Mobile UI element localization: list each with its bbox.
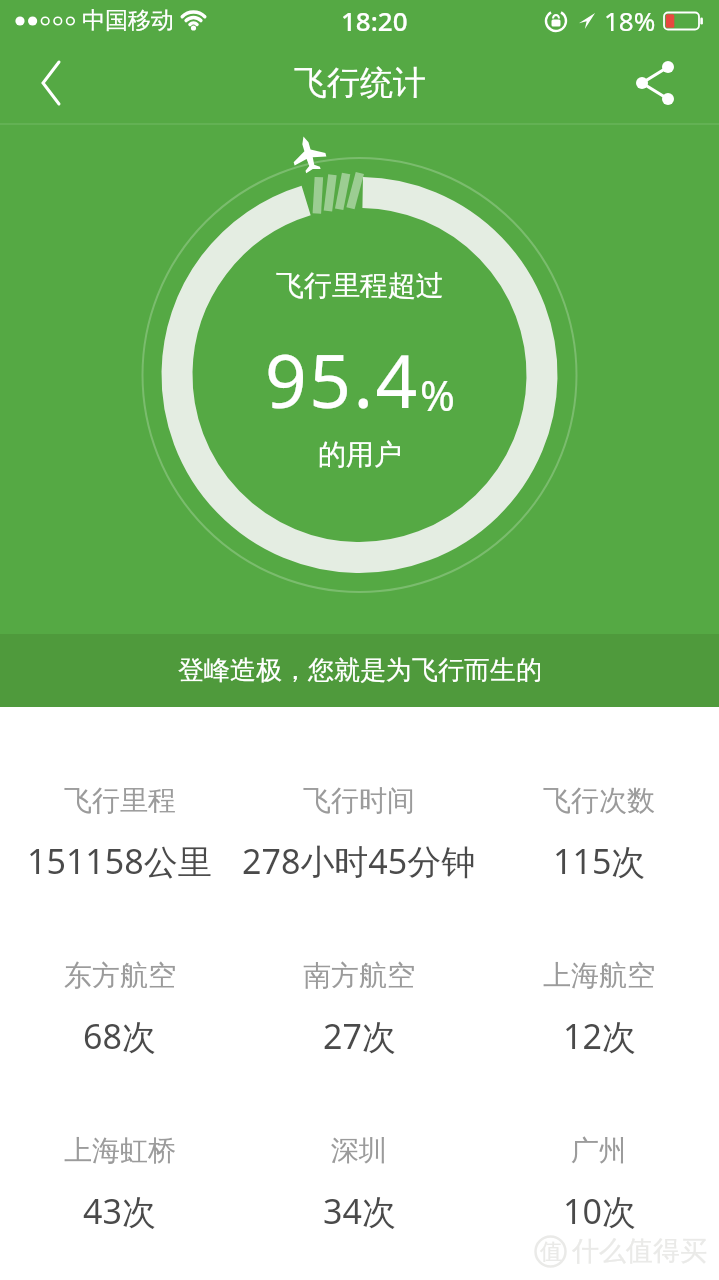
- staticText: 广州: [571, 1133, 627, 1168]
- staticText: 深圳: [331, 1133, 387, 1168]
- staticText: 东方航空: [64, 958, 176, 993]
- staticText: 登峰造极，您就是为飞行而生的: [178, 654, 542, 687]
- button[interactable]: [631, 59, 679, 107]
- staticText: 68次: [83, 1013, 156, 1059]
- staticText: 值: [540, 1238, 562, 1266]
- button[interactable]: 上海航空: [479, 958, 719, 1059]
- button[interactable]: 飞行时间: [239, 783, 479, 884]
- staticText: 飞行里程: [64, 783, 176, 818]
- staticText: 飞行统计: [294, 62, 426, 104]
- staticText: 10次: [563, 1188, 636, 1234]
- button[interactable]: 上海虹桥: [0, 1133, 239, 1234]
- staticText: 43次: [83, 1188, 156, 1234]
- staticText: 27次: [323, 1013, 396, 1059]
- staticText: 飞行里程超过: [276, 268, 444, 303]
- button[interactable]: 飞行次数: [479, 783, 719, 884]
- staticText: %: [420, 366, 455, 423]
- button[interactable]: 东方航空: [0, 958, 239, 1059]
- staticText: 飞行次数: [543, 783, 655, 818]
- staticText: 95.4: [265, 330, 420, 429]
- staticText: 151158公里: [27, 838, 212, 884]
- button[interactable]: 南方航空: [239, 958, 479, 1059]
- staticText: 上海虹桥: [64, 1133, 176, 1168]
- staticText: 34次: [323, 1188, 396, 1234]
- button[interactable]: 飞行里程: [0, 783, 239, 884]
- staticText: 115次: [553, 838, 646, 884]
- staticText: 18:20: [341, 3, 408, 38]
- staticText: 18%: [604, 3, 656, 38]
- staticText: 12次: [563, 1013, 636, 1059]
- staticText: 的用户: [318, 437, 402, 472]
- button[interactable]: 深圳: [239, 1133, 479, 1234]
- staticText: 飞行时间: [303, 783, 415, 818]
- staticText: 中国移动: [82, 6, 174, 35]
- staticText: 278小时45分钟: [242, 838, 476, 884]
- staticText: 南方航空: [303, 958, 415, 993]
- staticText: 什么值得买: [572, 1234, 707, 1268]
- button[interactable]: 广州: [479, 1133, 719, 1234]
- staticText: 上海航空: [543, 958, 655, 993]
- button[interactable]: [27, 59, 75, 107]
